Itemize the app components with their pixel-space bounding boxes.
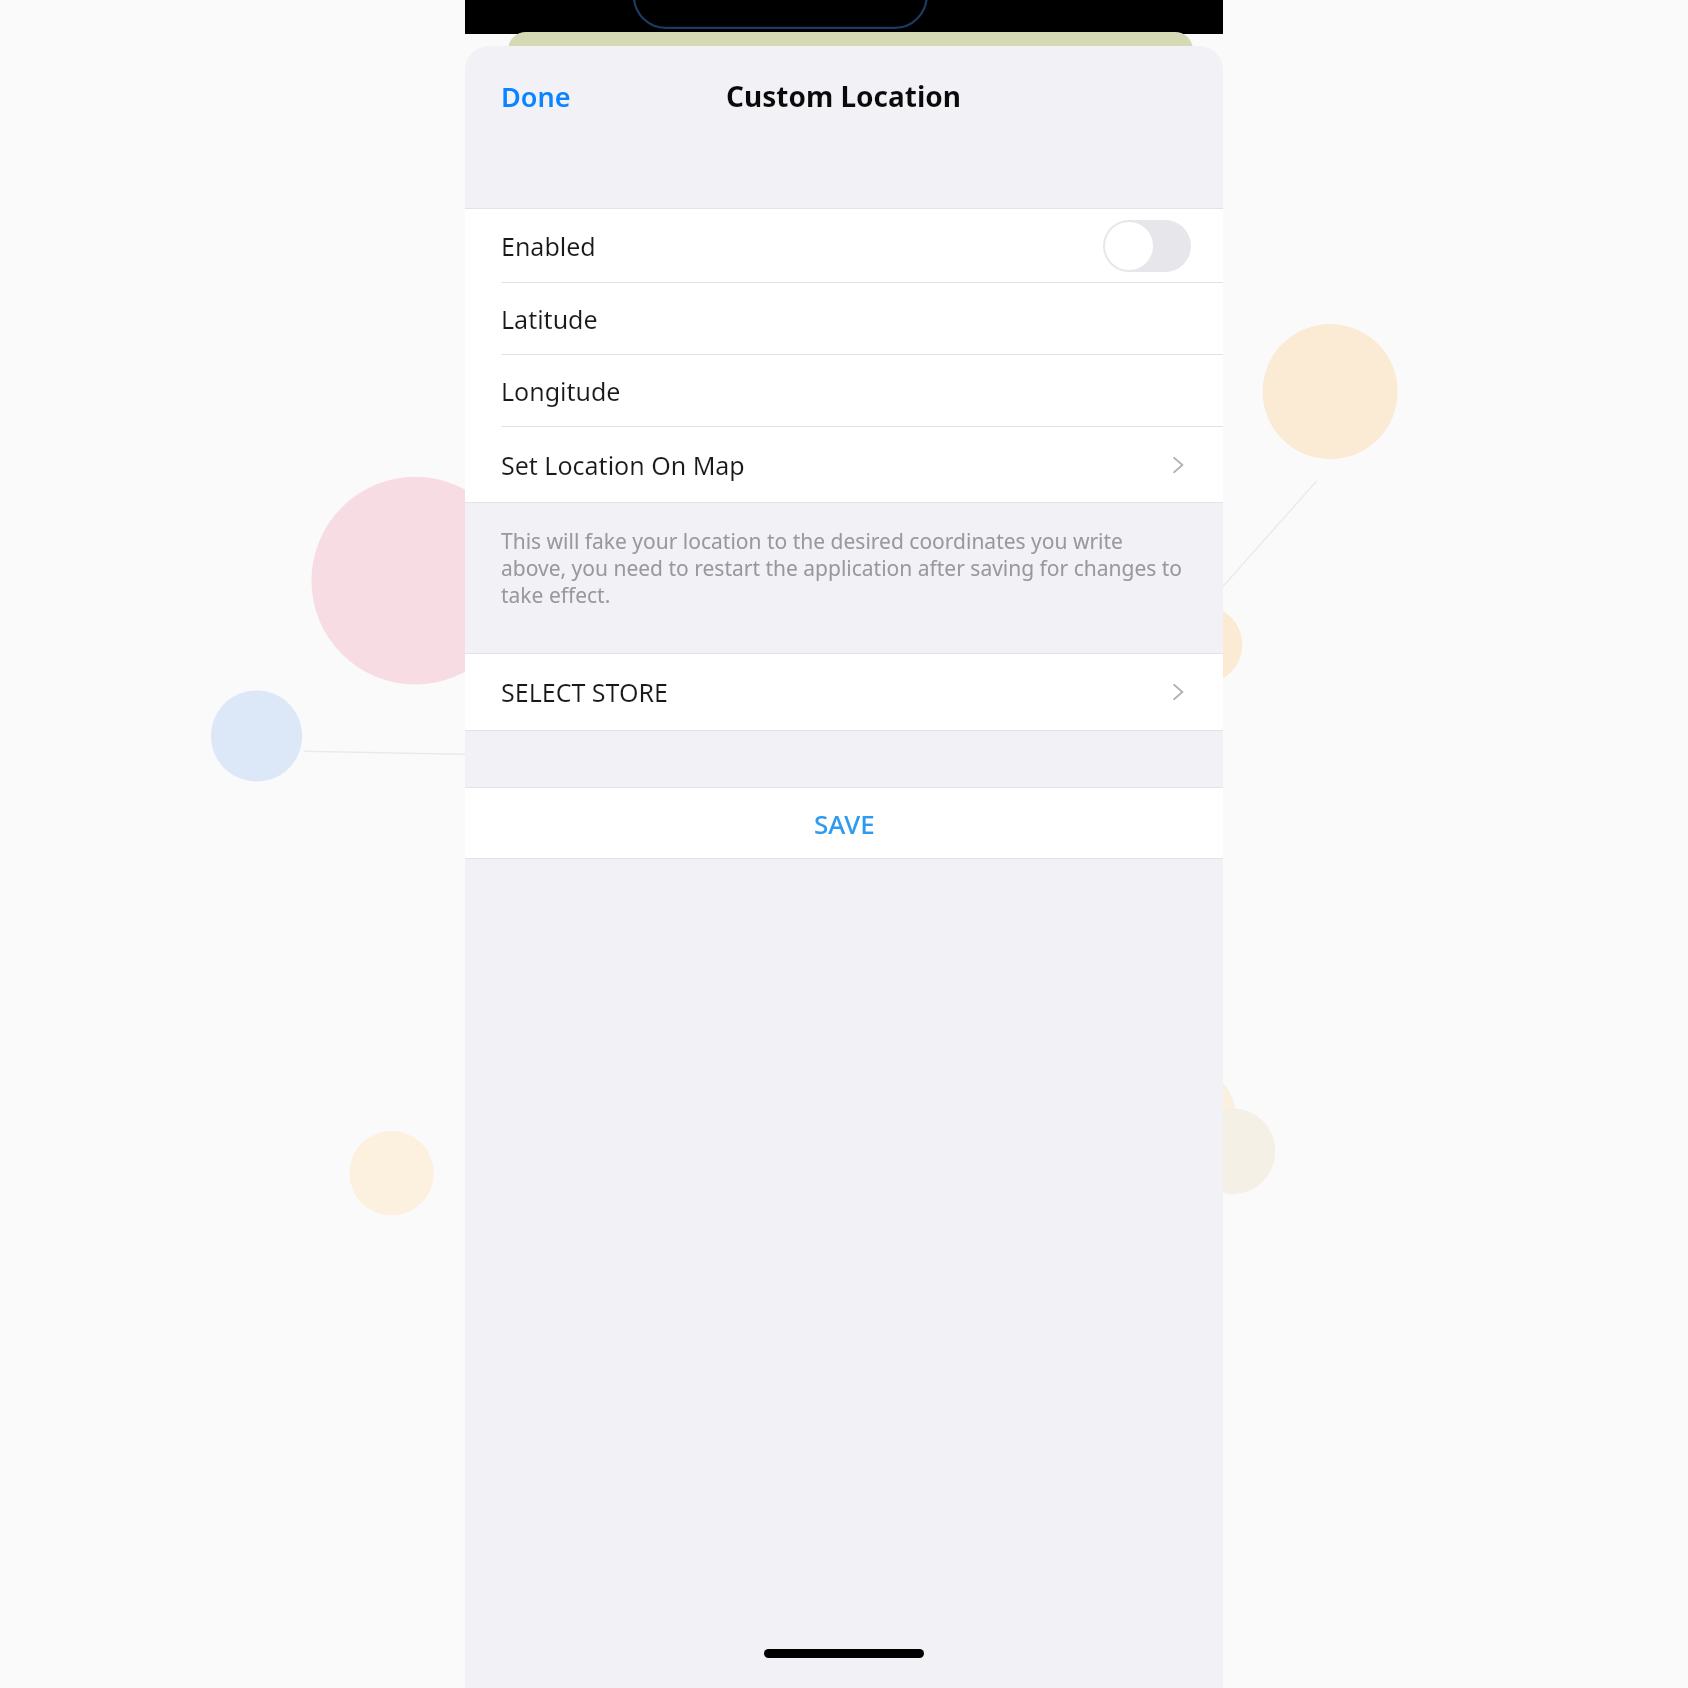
staticText: Latitude xyxy=(501,302,598,336)
button[interactable]: Longitude xyxy=(465,355,1223,426)
button[interactable]: SELECT STORE xyxy=(465,654,1223,730)
staticText: Longitude xyxy=(501,374,621,408)
staticText: SELECT STORE xyxy=(501,675,668,709)
staticText: SAVE xyxy=(814,806,875,841)
staticText: Done xyxy=(501,78,571,115)
button[interactable]: Set Location On Map xyxy=(465,427,1223,502)
staticText: Set Location On Map xyxy=(501,448,745,482)
button[interactable]: Enabled toggle, off xyxy=(1103,220,1191,272)
staticText: This will fake your location to the desi… xyxy=(501,527,1187,609)
button[interactable]: SAVE xyxy=(465,788,1223,858)
button[interactable]: Done xyxy=(485,70,587,123)
button[interactable]: Enabled xyxy=(465,209,1223,282)
staticText: Enabled xyxy=(501,229,596,263)
staticText: Custom Location xyxy=(726,77,962,115)
button[interactable]: Latitude xyxy=(465,283,1223,354)
